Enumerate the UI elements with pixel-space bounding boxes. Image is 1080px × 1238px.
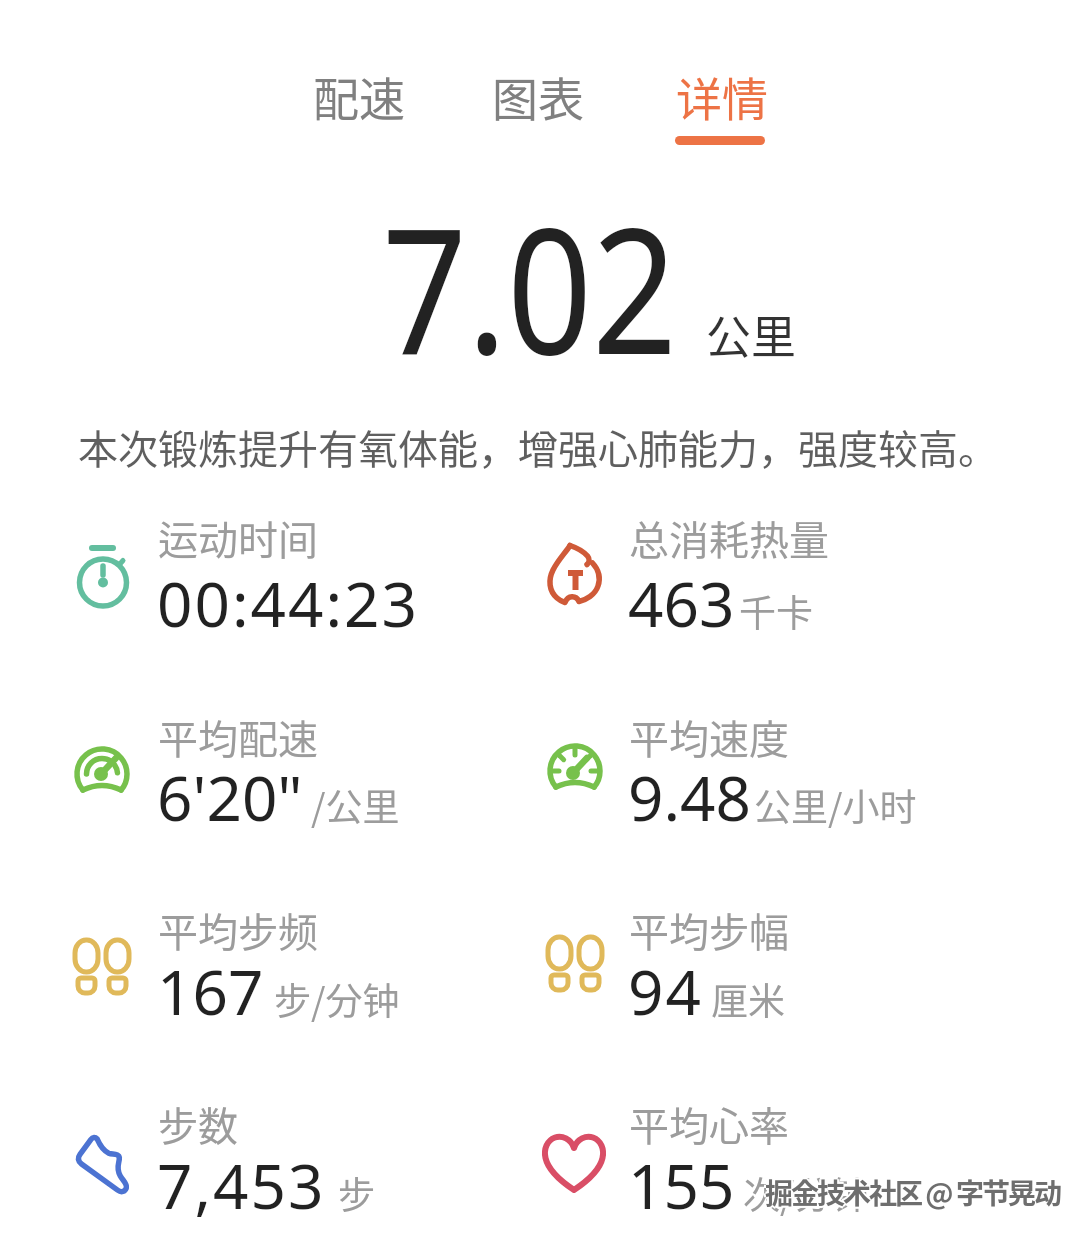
staticText: 掘金技术社区 @ 字节晃动 — [765, 1172, 1060, 1213]
staticText: 155 — [628, 1143, 735, 1227]
staticText: 步数 — [158, 1095, 238, 1153]
button[interactable]: 图表 — [474, 49, 604, 119]
staticText: 次/分钟 — [743, 1166, 869, 1220]
staticText: 7,453 — [157, 1143, 326, 1227]
button[interactable]: 配速 — [295, 49, 425, 119]
staticText: 平均步幅 — [629, 901, 789, 959]
button[interactable]: 详情 — [658, 49, 788, 119]
staticText: 步/分钟 — [274, 972, 400, 1026]
staticText: 详情 — [676, 63, 768, 130]
staticText: 94 — [628, 949, 703, 1033]
staticText: 公里 — [706, 302, 797, 367]
staticText: 掘金技术社区 @ 字节晃动 — [765, 1170, 1060, 1211]
staticText: 平均心率 — [629, 1095, 789, 1153]
staticText: 平均步频 — [158, 901, 318, 959]
staticText: 图表 — [492, 63, 584, 130]
staticText: 463 — [628, 561, 735, 645]
staticText: 平均速度 — [629, 708, 789, 766]
staticText: 掘金技术社区 @ 字节晃动 — [765, 1174, 1060, 1215]
staticText: 厘米 — [711, 972, 785, 1026]
staticText: 掘金技术社区 @ 字节晃动 — [767, 1172, 1062, 1213]
staticText: 步 — [338, 1166, 375, 1220]
staticText: 掘金技术社区 @ 字节晃动 — [763, 1172, 1058, 1213]
staticText: 公里/小时 — [754, 778, 917, 832]
staticText: 配速 — [313, 63, 405, 130]
staticText: 千卡 — [739, 584, 813, 638]
staticText: 总消耗热量 — [629, 509, 829, 567]
staticText: 本次锻炼提升有氧体能，增强心肺能力，强度较高。 — [78, 418, 998, 476]
staticText: 运动时间 — [158, 509, 318, 567]
staticText: 00:44:23 — [157, 561, 420, 645]
staticText: 9.48 — [628, 755, 752, 839]
staticText: 7.02 — [382, 169, 678, 405]
staticText: 平均配速 — [158, 708, 318, 766]
staticText: 167 — [157, 949, 264, 1033]
staticText: 6'20" — [157, 755, 303, 839]
staticText: /公里 — [311, 778, 400, 832]
